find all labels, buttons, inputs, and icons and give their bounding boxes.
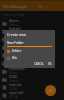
staticText: 240 KB — [9, 95, 18, 99]
staticText: Alarms — [9, 19, 19, 23]
button[interactable]: report.pdf — [0, 91, 64, 99]
staticText: DCIM — [9, 75, 17, 79]
staticText: CANCEL — [34, 62, 44, 66]
staticText: 5 items — [9, 39, 18, 43]
button[interactable]: CANCEL — [32, 61, 46, 67]
staticText: Folder — [12, 49, 22, 53]
button[interactable]: Music — [0, 43, 64, 51]
staticText: Downloads — [9, 67, 25, 71]
button[interactable]: Android — [0, 27, 64, 35]
staticText: Android — [9, 27, 21, 31]
button[interactable]: File — [6, 55, 18, 61]
button[interactable]: Folder — [6, 48, 23, 54]
staticText: Pictures — [9, 51, 21, 55]
staticText: 1.2 KB — [9, 87, 17, 91]
staticText: 8 items — [9, 71, 18, 75]
staticText: New Folder — [7, 41, 24, 45]
button[interactable]: DCIM — [0, 75, 64, 83]
staticText: notes.txt — [9, 83, 22, 87]
staticText: 42 items — [9, 55, 20, 59]
staticText: Music — [9, 43, 18, 47]
staticText: report.pdf — [9, 91, 24, 95]
button[interactable]: OK — [46, 61, 54, 67]
staticText: Camera — [9, 59, 20, 63]
button[interactable]: More options — [43, 3, 50, 10]
button[interactable]: notes.txt — [0, 83, 64, 91]
staticText: Create new — [7, 32, 26, 37]
button[interactable]: Camera — [0, 59, 64, 67]
button[interactable]: Search — [37, 3, 44, 10]
staticText: Documents — [9, 35, 26, 39]
staticText: OK — [48, 62, 52, 66]
staticText: 2 items — [9, 23, 18, 27]
staticText: File Manager — [3, 4, 28, 9]
button[interactable]: Documents — [0, 35, 64, 43]
staticText: Internal storage — [3, 13, 25, 17]
staticText: 3 items — [9, 79, 18, 83]
button[interactable]: Add new — [45, 85, 56, 96]
button[interactable]: Downloads — [0, 67, 64, 75]
staticText: File — [12, 56, 17, 60]
staticText: 12 items — [9, 31, 20, 35]
staticText: 18 items — [9, 47, 20, 51]
button[interactable]: Alarms — [0, 19, 64, 27]
button[interactable]: Pictures — [0, 51, 64, 59]
